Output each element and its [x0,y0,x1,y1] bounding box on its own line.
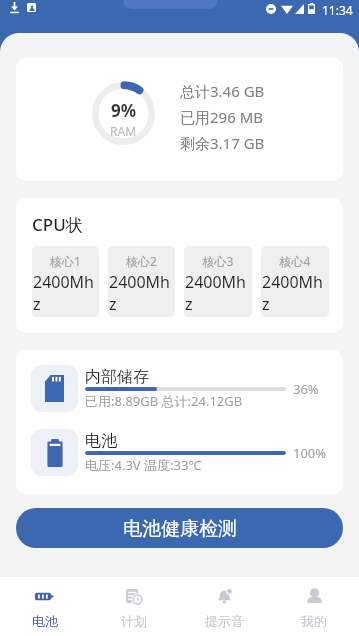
other: 计划 [125,588,144,605]
staticText: 提示音 [205,613,244,629]
staticText: 核心1 [33,253,98,269]
staticText: 核心2 [109,253,174,269]
staticText: 11:34 [322,2,353,18]
button[interactable]: 计划 [89,577,179,636]
button[interactable]: 电池健康检测 [16,508,343,548]
staticText: 总计3.46 GB [180,81,265,101]
staticText: 36% [293,380,319,398]
button[interactable]: 电池 [0,577,89,636]
staticText: 2400Mhz [262,271,328,310]
staticText: 2400Mhz [185,271,251,310]
staticText: 剩余3.17 GB [180,133,265,153]
staticText: 已用296 MB [180,107,263,127]
other: 提示音 [215,588,234,605]
staticText: 电池 [32,613,58,629]
button[interactable]: 提示音 [179,577,269,636]
staticText: 100% [293,444,327,462]
staticText: 我的 [301,613,327,629]
staticText: 电池 [85,431,117,451]
staticText: 电池健康检测 [123,517,237,541]
staticText: 内部储存 [85,367,149,387]
staticText: 已用:8.89GB 总计:24.12GB [85,392,243,410]
button[interactable]: 我的 [269,577,359,636]
other: 电池 [35,588,54,605]
staticText: 计划 [121,613,147,629]
staticText: 9% [111,99,137,122]
other: 我的 [305,588,324,605]
staticText: 核心3 [185,253,251,269]
staticText: 电压:4.3V 温度:33℃ [85,456,202,474]
staticText: CPU状 [32,213,83,236]
staticText: 2400Mhz [109,271,174,310]
staticText: RAM [110,123,137,139]
staticText: 核心4 [262,253,328,269]
staticText: 2400Mhz [33,271,98,310]
